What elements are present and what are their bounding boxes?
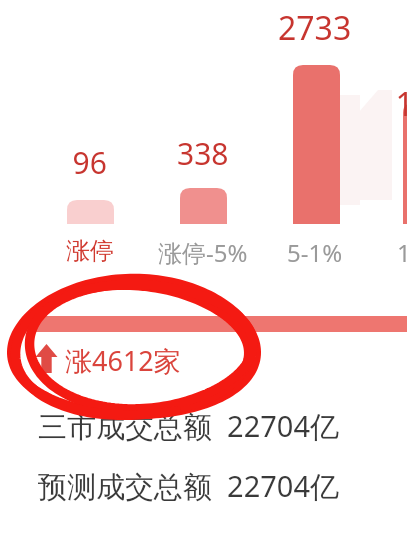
button[interactable]: Market breadth chart: [0, 0, 407, 543]
